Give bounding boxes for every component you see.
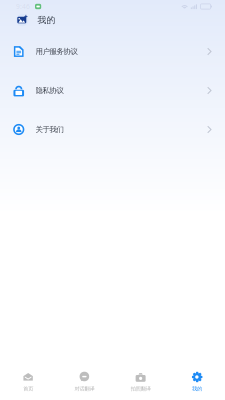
staticText: 我的 (192, 385, 202, 392)
staticText: 我的 (37, 14, 55, 26)
staticText: 拍照翻译 (131, 385, 151, 392)
button[interactable]: 用户服务协议 (0, 32, 225, 71)
button[interactable]: 拍照翻译 (112, 367, 169, 395)
staticText: 隐私协议 (35, 86, 63, 95)
staticText: 关于我们 (35, 125, 63, 134)
staticText: 用户服务协议 (35, 47, 77, 56)
button[interactable]: 关于我们 (0, 110, 225, 149)
button[interactable]: 我的 (169, 367, 225, 395)
button[interactable]: 首页 (0, 367, 56, 395)
staticText: 9:46 (16, 2, 30, 11)
button[interactable]: 对话翻译 (56, 367, 112, 395)
staticText: 对话翻译 (74, 385, 94, 392)
button[interactable]: 隐私协议 (0, 71, 225, 110)
staticText: 首页 (23, 385, 33, 392)
